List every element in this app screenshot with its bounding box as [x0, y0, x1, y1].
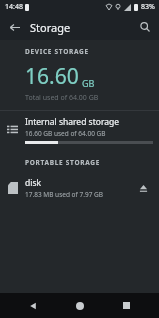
- staticText: GB: [82, 77, 95, 89]
- staticText: 16.60: [25, 62, 79, 91]
- staticText: 83%: [141, 2, 155, 12]
- staticText: Internal shared storage: [25, 116, 120, 128]
- button[interactable]: Back: [3, 16, 25, 38]
- button[interactable]: Internal shared storage: [0, 111, 159, 148]
- button[interactable]: disk: [0, 173, 159, 203]
- staticText: disk: [25, 177, 42, 189]
- staticText: Total used of 64.00 GB: [25, 93, 99, 103]
- button[interactable]: Recents: [113, 293, 139, 318]
- staticText: 14:48: [5, 2, 23, 12]
- button[interactable]: Eject: [131, 176, 155, 200]
- button[interactable]: Home: [67, 293, 93, 318]
- staticText: DEVICE STORAGE: [25, 47, 89, 56]
- button[interactable]: Search: [134, 16, 156, 38]
- staticText: 17.83 MB used of 7.97 GB: [25, 190, 104, 199]
- staticText: 16.60 GB used of 64.00 GB: [25, 129, 106, 138]
- button[interactable]: Back: [20, 293, 46, 318]
- staticText: PORTABLE STORAGE: [25, 158, 101, 167]
- staticText: Storage: [30, 20, 71, 35]
